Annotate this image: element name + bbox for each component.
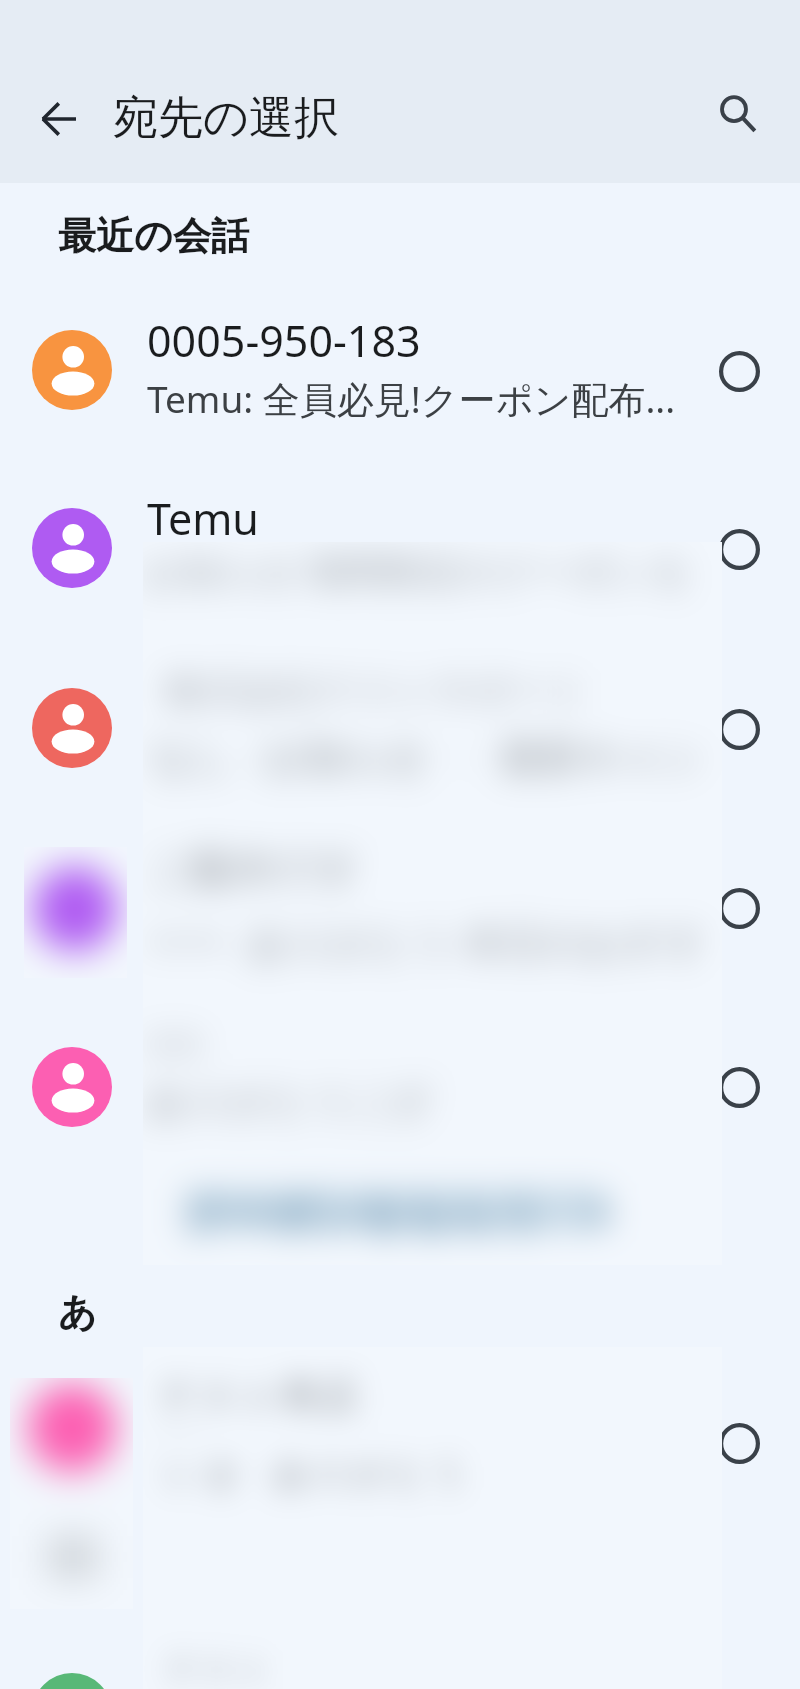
button[interactable]: Back [24,83,96,155]
button[interactable]: Search [702,78,774,150]
button[interactable]: Select recipient [703,872,775,944]
button[interactable]: Contact avatar [32,330,112,410]
staticText: 0005-950-183 [147,311,421,370]
staticText: クーポンをもらう > [183,1182,614,1242]
button[interactable]: Contact avatar [32,508,112,588]
button[interactable]: Select recipient [703,335,775,407]
staticText: なし · お知らせ · 最新キャンペーン情報です [151,728,722,783]
staticText: いま · ありがとう [165,1445,468,1497]
staticText: ご案内です [147,844,360,897]
staticText: 最近の会話 [58,212,249,260]
button[interactable]: Contact avatar [32,688,112,768]
staticText: 宛先の選択 [113,90,340,147]
staticText: テスト商店 [157,1371,360,1421]
button[interactable]: Select recipient [703,1051,775,1123]
button[interactable]: Select recipient [703,693,775,765]
staticText: 株式会社テストサポート [165,667,589,715]
staticText: お知らせ 期間限定のクーポンを配布中 今すぐチェック [143,544,722,596]
button[interactable]: Select recipient [703,1407,775,1479]
staticText: ーー ありがとう 本日のおすすめ商品 です [147,914,722,969]
button[interactable]: Contact avatar [32,1047,112,1127]
button[interactable]: Select recipient [703,513,775,585]
staticText: あ [58,1288,97,1336]
staticText: Temu [147,489,259,548]
staticText: Temu: 全員必見!クーポン配布... [147,373,676,424]
